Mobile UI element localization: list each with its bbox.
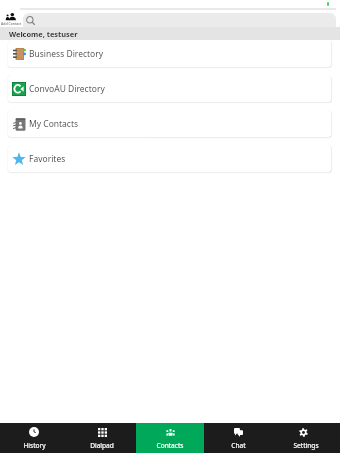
staticText: Dialpad: [90, 441, 114, 450]
button[interactable]: Add Contact: [0, 0, 22, 27]
button[interactable]: My Contacts: [8, 111, 331, 137]
button[interactable]: Business Directory: [8, 41, 331, 67]
staticText: Chat: [231, 441, 246, 450]
button[interactable]: ConvoAU Directory: [8, 76, 331, 102]
staticText: Contacts: [156, 441, 184, 450]
button[interactable]: Favorites: [8, 146, 331, 172]
button[interactable]: Search: [23, 13, 336, 27]
staticText: Add Contact: [1, 21, 22, 26]
staticText: Favorites: [29, 153, 66, 165]
staticText: ConvoAU Directory: [29, 83, 105, 95]
button[interactable]: History: [0, 423, 68, 453]
button[interactable]: Settings: [272, 423, 340, 453]
button[interactable]: Chat: [204, 423, 272, 453]
staticText: Settings: [293, 441, 319, 450]
staticText: My Contacts: [29, 118, 79, 130]
staticText: Welcome, testuser: [9, 29, 78, 39]
staticText: History: [23, 441, 46, 450]
button[interactable]: Contacts: [136, 423, 204, 453]
staticText: Business Directory: [29, 48, 104, 60]
button[interactable]: Dialpad: [68, 423, 136, 453]
